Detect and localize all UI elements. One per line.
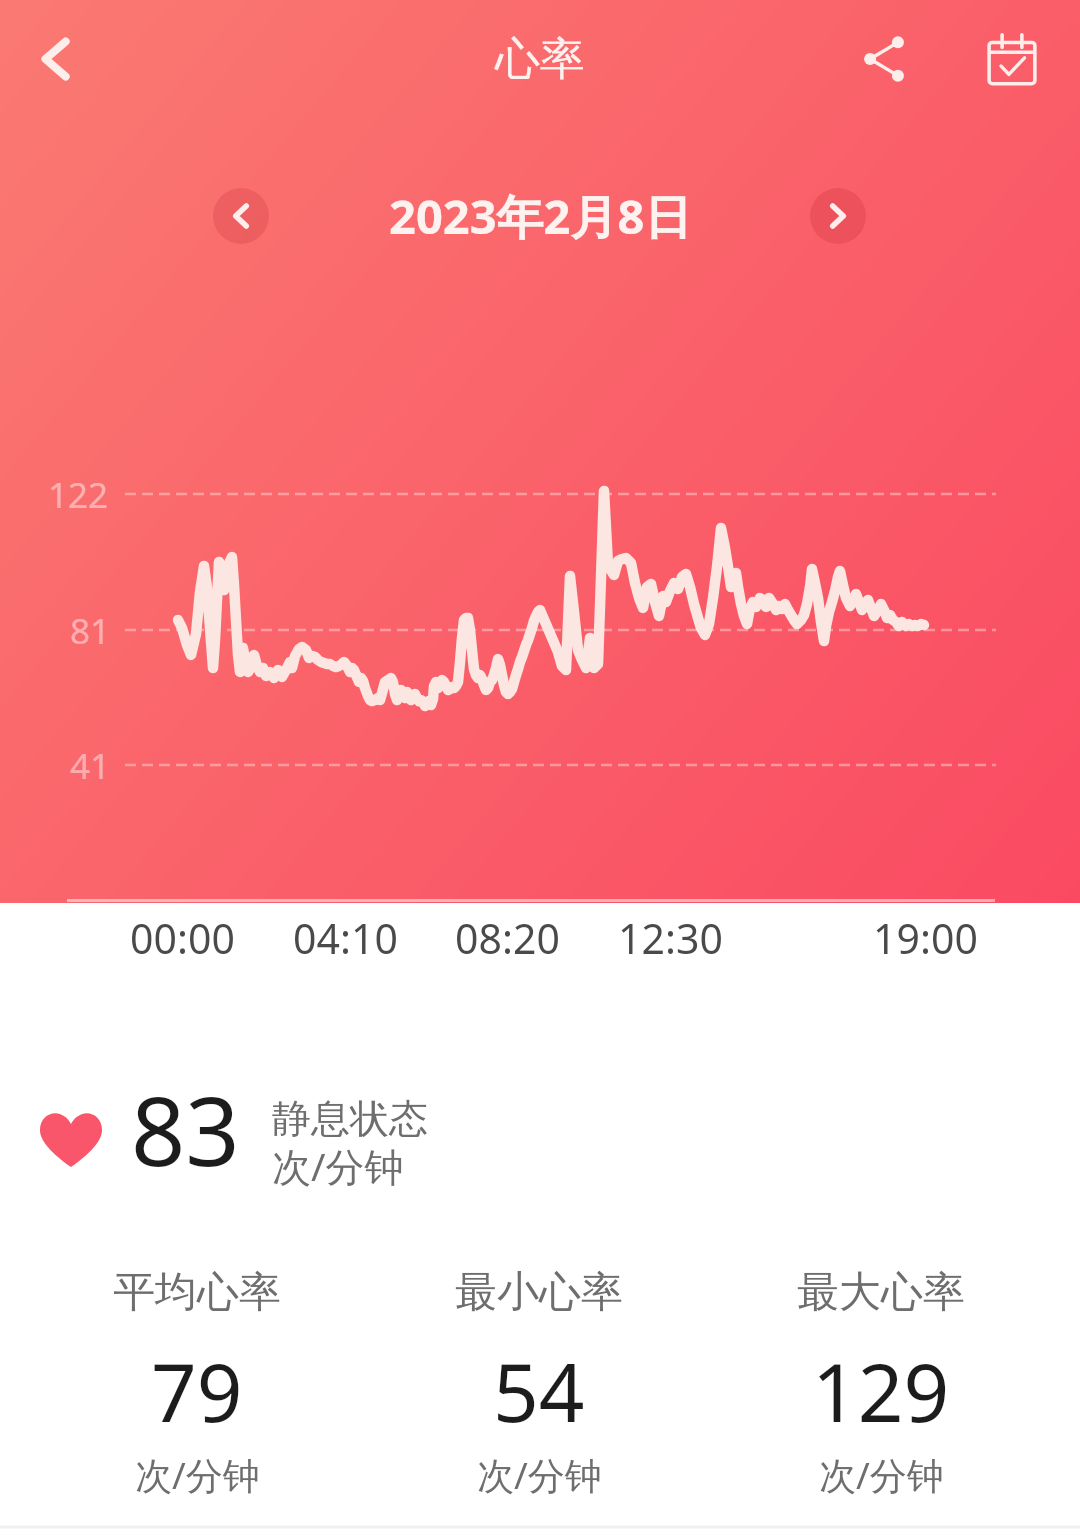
button[interactable]: 83 <box>0 1080 1080 1200</box>
staticText: 54 <box>493 1336 585 1445</box>
staticText: 心率 <box>495 31 585 88</box>
button[interactable]: Next day <box>810 188 866 244</box>
staticText: 次/分钟 <box>135 1449 260 1500</box>
staticText: 次/分钟 <box>819 1449 944 1500</box>
staticText: 83 <box>131 1064 240 1184</box>
staticText: 最小心率 <box>455 1266 623 1319</box>
button[interactable]: 最大心率 <box>710 1266 1052 1500</box>
staticText: 04:10 <box>293 910 398 966</box>
staticText: 最大心率 <box>797 1266 965 1319</box>
staticText: 81 <box>70 607 111 655</box>
staticText: 19:00 <box>873 910 978 966</box>
staticText: 41 <box>70 742 111 790</box>
button[interactable]: 平均心率 <box>26 1266 368 1500</box>
staticText: 次/分钟 <box>272 1139 404 1192</box>
button[interactable]: Calendar <box>970 17 1054 101</box>
staticText: 129 <box>812 1336 950 1445</box>
staticText: 79 <box>151 1336 243 1445</box>
staticText: 平均心率 <box>113 1266 281 1319</box>
staticText: 次/分钟 <box>477 1449 602 1500</box>
staticText: 08:20 <box>455 910 560 966</box>
staticText: 122 <box>48 471 109 519</box>
staticText: 00:00 <box>130 910 235 966</box>
staticText: 12:30 <box>618 910 723 966</box>
button[interactable]: Share <box>842 17 926 101</box>
staticText: 静息状态 <box>272 1094 428 1143</box>
button[interactable]: Back <box>14 17 98 101</box>
button[interactable]: 最小心率 <box>368 1266 710 1500</box>
staticText: 2023年2月8日 <box>389 184 692 248</box>
button[interactable]: Previous day <box>213 188 269 244</box>
button[interactable]: 2023年2月8日 <box>389 184 692 248</box>
